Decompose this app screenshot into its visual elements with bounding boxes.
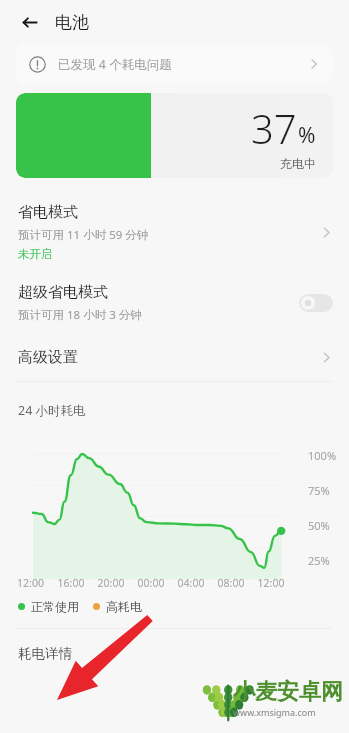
staticText: 电池	[55, 12, 89, 33]
staticText: 正常使用	[31, 599, 79, 614]
staticText: 已发现 4 个耗电问题	[58, 56, 172, 73]
staticText: www.xmsigma.com	[233, 706, 316, 718]
button[interactable]: 超级省电模式	[0, 273, 349, 333]
staticText: 高级设置	[18, 348, 320, 367]
button[interactable]: 已发现 4 个耗电问题	[16, 44, 333, 84]
staticText: 省电模式	[18, 203, 78, 222]
staticText: 24 小时耗电	[18, 402, 86, 419]
staticText: 75%	[308, 483, 330, 498]
staticText: 20:00	[91, 576, 131, 590]
staticText: 高耗电	[106, 599, 142, 614]
button[interactable]: 省电模式	[0, 191, 349, 273]
staticText: 08:00	[211, 576, 251, 590]
staticText: 预计可用 11 小时 59 分钟	[18, 227, 149, 243]
staticText: 超级省电模式	[18, 283, 108, 302]
staticText: 100%	[308, 448, 337, 463]
staticText: 00:00	[131, 576, 171, 590]
staticText: 37	[251, 101, 297, 155]
staticText: 04:00	[171, 576, 211, 590]
staticText: %	[298, 121, 316, 150]
staticText: 50%	[308, 518, 330, 533]
button[interactable]: 耗电详情	[0, 629, 349, 677]
staticText: 未开启	[18, 247, 53, 261]
staticText: 充电中	[280, 156, 316, 171]
staticText: 16:00	[51, 576, 91, 590]
staticText: 12:00	[10, 576, 51, 590]
button[interactable]: 返回	[10, 5, 44, 39]
staticText: 12:00	[251, 576, 291, 590]
button[interactable]: 37	[16, 93, 333, 178]
button[interactable]: 高级设置	[0, 333, 349, 381]
button[interactable]: 超级省电模式开关	[299, 294, 333, 312]
staticText: 预计可用 18 小时 3 分钟	[18, 307, 142, 323]
staticText: 小麦安卓网	[233, 678, 343, 706]
staticText: 25%	[308, 553, 330, 568]
staticText: 耗电详情	[18, 645, 72, 662]
